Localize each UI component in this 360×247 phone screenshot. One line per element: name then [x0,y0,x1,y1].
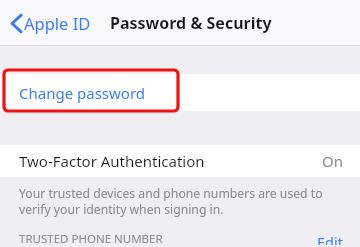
staticText: Change password [19,83,146,103]
staticText: Edit [317,232,343,245]
button[interactable]: Apple ID [9,8,93,38]
staticText: Your trusted devices and phone numbers a… [19,185,326,217]
button[interactable]: Change password [0,74,360,111]
staticText: Apple ID [24,12,91,34]
other: Highlight around Change password [0,0,360,247]
staticText: Password & Security [110,12,272,34]
staticText: Two-Factor Authentication [19,151,205,171]
button[interactable]: Edit [300,230,360,247]
button[interactable]: Two-Factor Authentication [0,145,360,177]
staticText: On [322,151,343,171]
staticText: TRUSTED PHONE NUMBER [19,231,163,247]
